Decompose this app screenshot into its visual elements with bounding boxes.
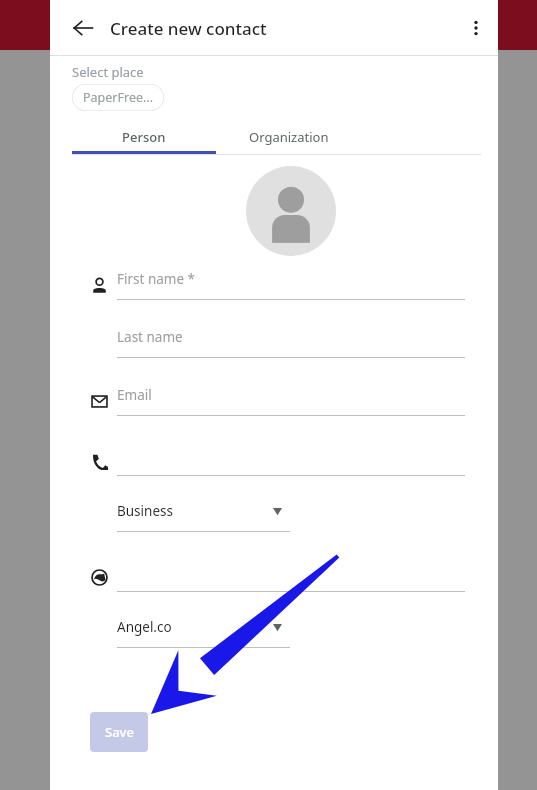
staticText: Select place — [72, 63, 144, 81]
button[interactable] — [117, 440, 465, 476]
button[interactable]: Organization — [216, 120, 362, 153]
button[interactable]: Last name — [117, 322, 465, 358]
button[interactable]: First name * — [117, 264, 465, 300]
button[interactable]: More options — [458, 10, 494, 46]
button[interactable]: Save — [90, 712, 148, 752]
staticText: Organization — [249, 128, 329, 146]
button[interactable]: Add photo — [246, 166, 336, 256]
button[interactable]: Back — [65, 10, 101, 46]
staticText: Create new contact — [110, 17, 267, 40]
staticText: Last name — [117, 328, 183, 346]
staticText: Person — [122, 128, 166, 146]
staticText: PaperFree... — [83, 89, 154, 106]
staticText: Angel.co — [117, 618, 172, 636]
staticText: Business — [117, 502, 173, 520]
staticText: First name * — [117, 270, 196, 288]
button[interactable]: Angel.co — [117, 612, 290, 648]
staticText: Email — [117, 386, 152, 404]
button[interactable]: Email — [117, 380, 465, 416]
staticText: Save — [105, 723, 134, 741]
button[interactable] — [117, 556, 465, 592]
button[interactable]: Business — [117, 496, 290, 532]
button[interactable]: Person — [72, 120, 216, 153]
button[interactable]: PaperFree... — [72, 84, 164, 111]
